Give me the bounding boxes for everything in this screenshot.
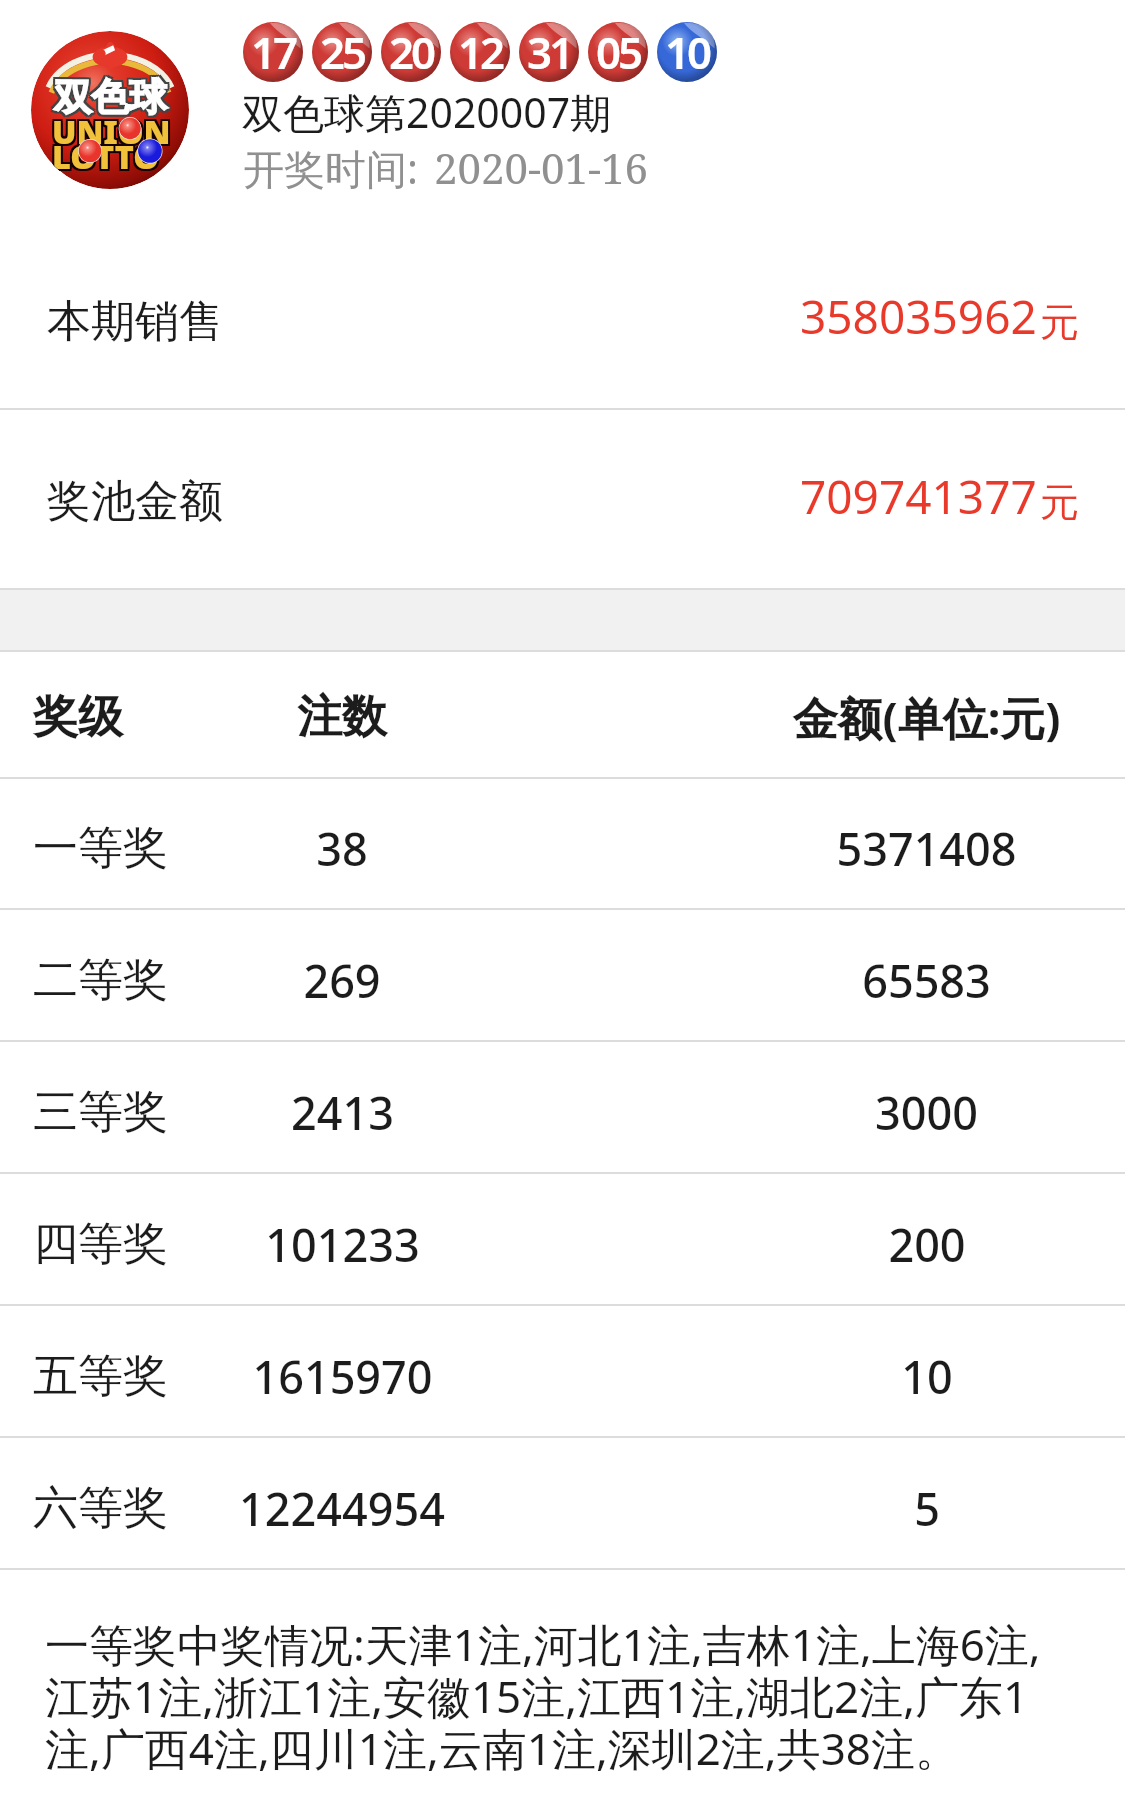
button[interactable]: 奖级 — [0, 652, 1125, 777]
staticText: 金额(单位:元) — [792, 687, 1061, 748]
staticText: 双色球 — [52, 72, 165, 119]
staticText: 奖池金额 — [47, 474, 223, 529]
staticText: UNION — [54, 109, 173, 153]
staticText: 双色球第2020007期 — [242, 84, 612, 140]
staticText: UNION — [50, 111, 169, 155]
staticText: LOTTO — [52, 136, 160, 180]
staticText: 奖级 — [33, 689, 123, 746]
staticText: LOTTO — [54, 134, 162, 178]
button[interactable]: 三等奖 — [0, 1042, 1125, 1172]
button[interactable]: 二等奖 — [0, 910, 1125, 1040]
staticText: 269 — [303, 950, 381, 1011]
staticText: 二等奖 — [33, 952, 168, 1009]
staticText: UNION — [54, 107, 173, 151]
staticText: 10 — [901, 1346, 953, 1407]
staticText: 三等奖 — [33, 1084, 168, 1141]
button[interactable]: 六等奖 — [0, 1438, 1125, 1568]
staticText: 双色球 — [56, 74, 169, 121]
staticText: 5 — [914, 1478, 940, 1539]
staticText: 12244954 — [239, 1478, 445, 1539]
staticText: 5371408 — [836, 818, 1017, 879]
staticText: UNION — [52, 111, 171, 155]
staticText: 25 — [320, 22, 365, 82]
staticText: 2413 — [291, 1082, 394, 1143]
staticText: 本期销售 — [47, 294, 223, 349]
button[interactable]: 本期销售 — [0, 230, 1125, 408]
staticText: UNION — [50, 107, 169, 151]
staticText: LOTTO — [50, 136, 158, 180]
staticText: 双色球 — [56, 72, 169, 119]
staticText: 开奖时间: — [243, 140, 418, 196]
staticText: LOTTO — [50, 132, 158, 176]
staticText: 注数 — [297, 689, 387, 746]
staticText: 10 — [665, 22, 710, 82]
staticText: LOTTO — [50, 134, 158, 178]
staticText: UNION — [52, 109, 171, 153]
staticText: 双色球 — [52, 74, 165, 121]
staticText: 双色球 — [54, 76, 167, 123]
button[interactable]: 五等奖 — [0, 1306, 1125, 1436]
staticText: 元 — [1040, 298, 1079, 347]
button[interactable]: 一等奖中奖情况:天津1注,河北1注,吉林1注,上海6注,江苏1注,浙江1注,安徽… — [0, 1614, 1125, 1778]
staticText: 05 — [596, 22, 641, 82]
staticText: 12 — [458, 22, 503, 82]
staticText: 四等奖 — [33, 1216, 168, 1273]
staticText: LOTTO — [52, 132, 160, 176]
staticText: LOTTO — [52, 134, 160, 178]
staticText: 一等奖 — [33, 820, 168, 877]
staticText: UNION — [52, 107, 171, 151]
button[interactable]: 奖池金额 — [0, 410, 1125, 588]
staticText: 3000 — [875, 1082, 978, 1143]
staticText: 双色球 — [54, 72, 167, 119]
staticText: 双色球 — [52, 76, 165, 123]
staticText: 1615970 — [252, 1346, 433, 1407]
staticText: 一等奖中奖情况:天津1注,河北1注,吉林1注,上海6注,江苏1注,浙江1注,安徽… — [45, 1614, 1058, 1778]
staticText: LOTTO — [54, 132, 162, 176]
staticText: 17 — [251, 22, 296, 82]
button[interactable]: 中奖号码 17 25 20 12 31 05 10 — [243, 22, 717, 82]
staticText: 101233 — [265, 1214, 420, 1275]
button[interactable]: 四等奖 — [0, 1174, 1125, 1304]
button[interactable]: 双色球 Union Lotto logo — [31, 31, 189, 189]
staticText: 双色球 — [56, 76, 169, 123]
staticText: 五等奖 — [33, 1348, 168, 1405]
staticText: UNION — [50, 109, 169, 153]
staticText: 六等奖 — [33, 1480, 168, 1537]
staticText: 65583 — [862, 950, 991, 1011]
staticText: 200 — [888, 1214, 966, 1275]
staticText: UNION — [54, 111, 173, 155]
staticText: 358035962 — [800, 285, 1037, 348]
staticText: 38 — [316, 818, 368, 879]
staticText: 709741377 — [800, 465, 1037, 528]
staticText: 2020-01-16 — [434, 139, 648, 196]
staticText: 31 — [527, 22, 572, 82]
button[interactable]: 一等奖 — [0, 779, 1125, 908]
staticText: 元 — [1040, 478, 1079, 527]
staticText: 双色球 — [54, 74, 167, 121]
staticText: 20 — [389, 22, 434, 82]
staticText: LOTTO — [54, 136, 162, 180]
